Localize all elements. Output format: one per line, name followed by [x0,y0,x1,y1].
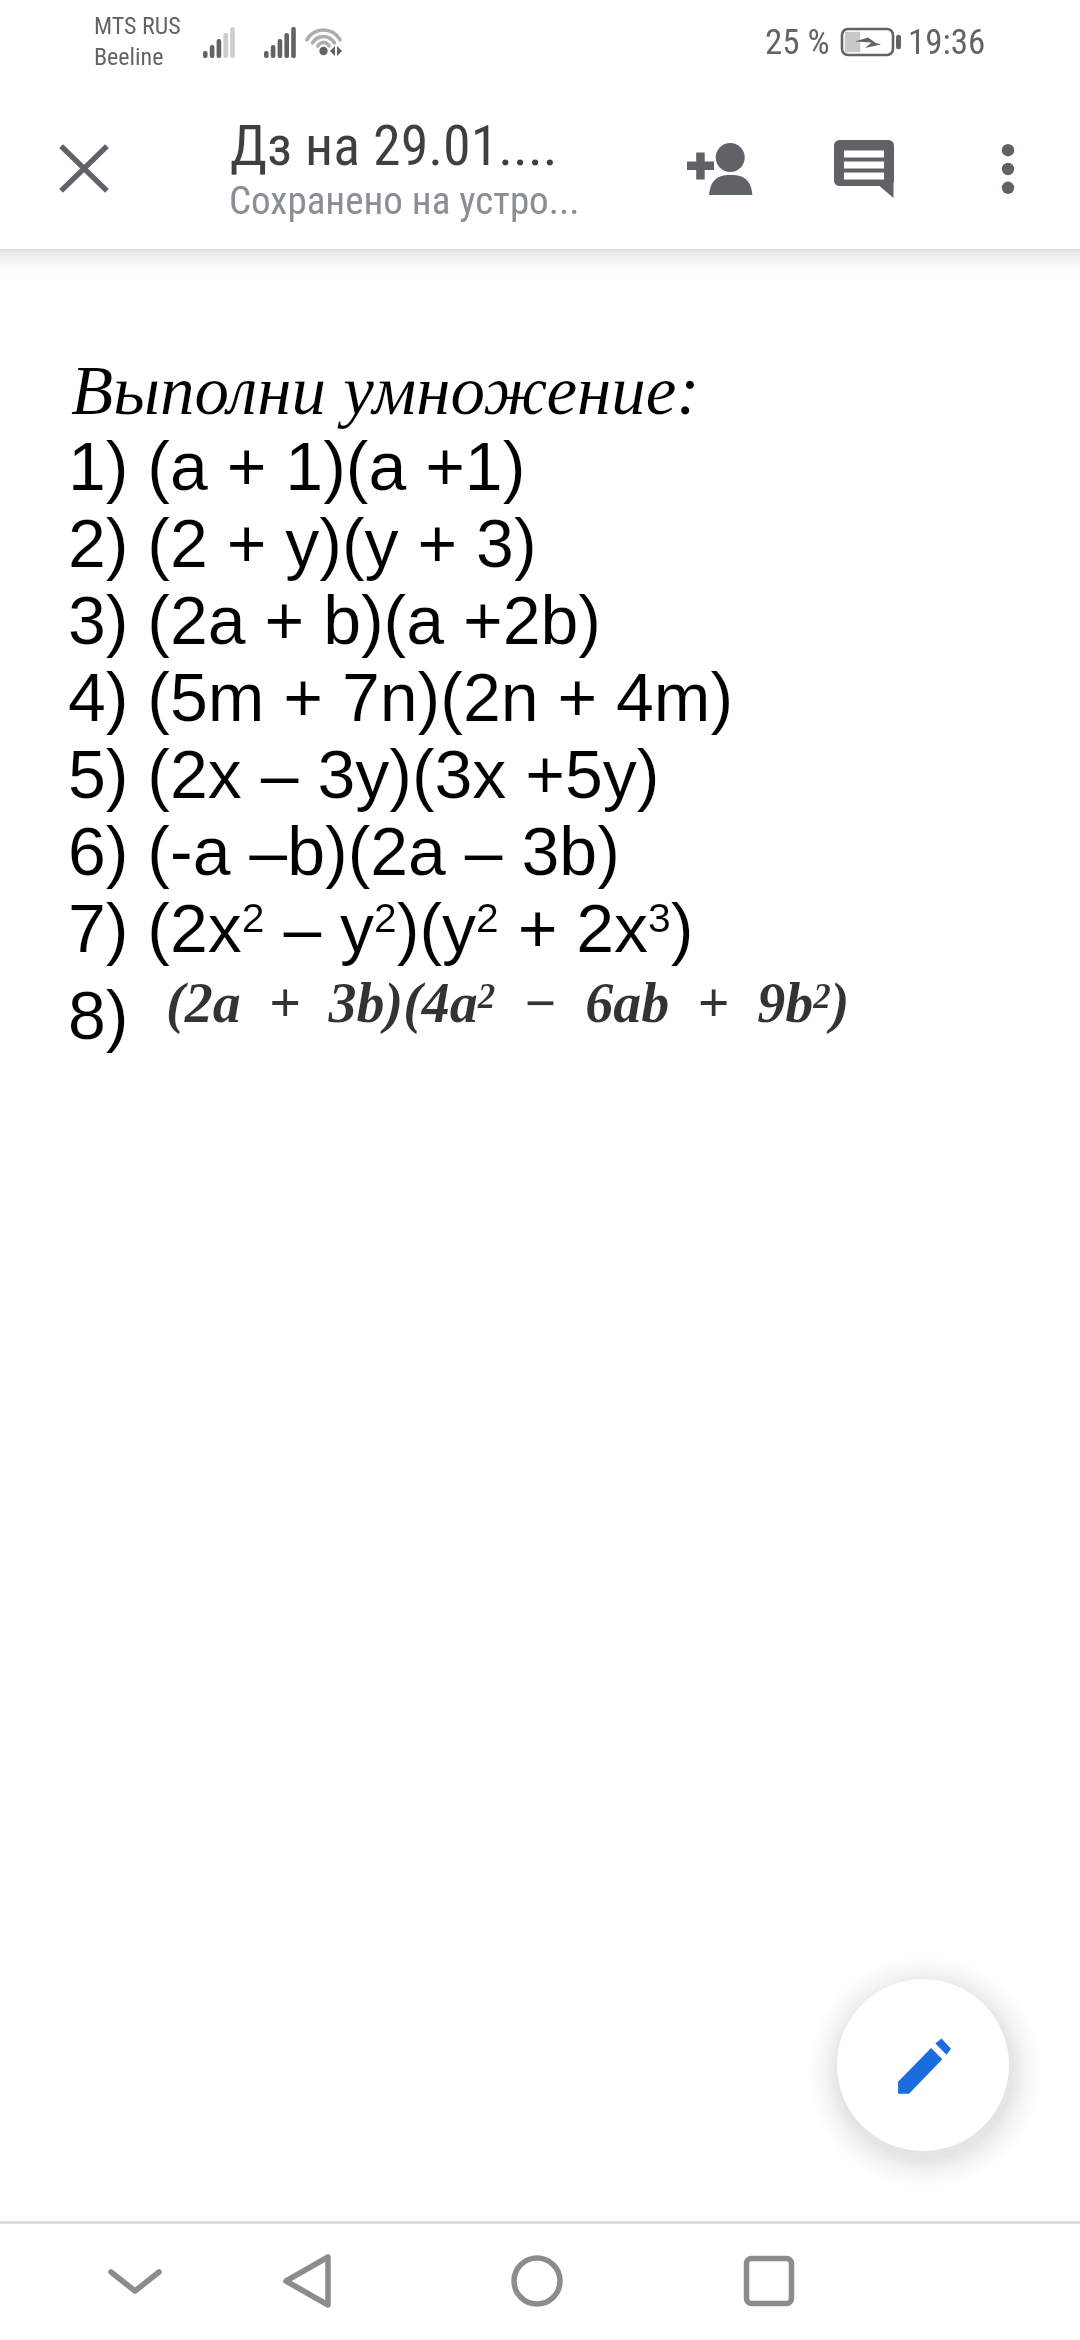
staticText: 3) (2a + b)(a +2b) [68,582,601,658]
button[interactable]: Back [247,2221,367,2340]
staticText: 4) (5m + 7n)(2n + 4m) [68,659,734,735]
staticText: 5) (2x – 3y)(3x +5y) [68,736,660,812]
staticText: Выполни умножение: [71,353,700,429]
staticText: 19:36 [908,22,986,63]
staticText: 2) (2 + y)(y + 3) [68,505,537,581]
button[interactable]: Home [477,2221,597,2340]
button[interactable]: Hide keyboard [75,2221,195,2340]
button[interactable]: Add people [660,109,780,229]
staticText: (2a + 3b)(4a2 − 6ab + 9b2) [166,972,850,1034]
button[interactable]: More options [948,109,1068,229]
button[interactable]: Comments [804,109,924,229]
staticText: 1) (a + 1)(a +1) [68,428,526,504]
button[interactable]: Edit [837,1979,1009,2151]
button[interactable]: Close [24,108,144,228]
staticText: Дз на 29.01.... [230,113,558,179]
staticText: MTS RUS [94,12,181,40]
staticText: 6) (-a –b)(2a – 3b) [68,813,620,889]
staticText: 7) (2x2 – y2)(y2 + 2x3) [68,890,694,966]
staticText: 8) [68,977,129,1053]
button[interactable]: Recents [709,2221,829,2340]
staticText: Beeline [94,43,164,71]
staticText: Сохранено на устро... [229,178,580,224]
staticText: 25 % [765,22,830,63]
